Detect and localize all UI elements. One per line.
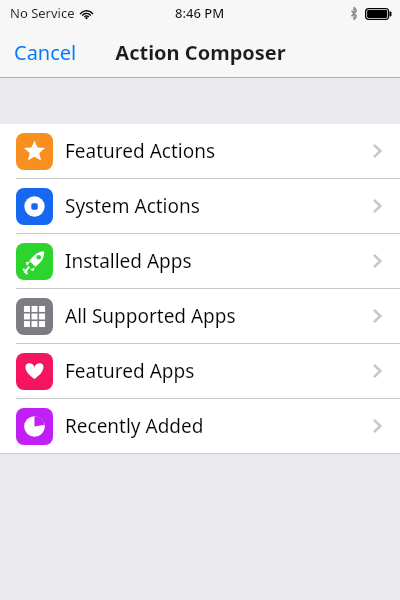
staticText: Installed Apps	[65, 248, 370, 274]
staticText: Featured Actions	[65, 138, 370, 164]
button[interactable]: System Actions	[0, 179, 400, 233]
staticText: 8:46 PM	[175, 4, 225, 22]
staticText: Featured Apps	[65, 358, 370, 384]
staticText: Action Composer	[115, 39, 286, 66]
staticText: Cancel	[14, 39, 77, 66]
staticText: Recently Added	[65, 413, 370, 439]
staticText: No Service	[10, 4, 75, 22]
button[interactable]: Recently Added	[0, 399, 400, 453]
staticText: All Supported Apps	[65, 303, 370, 329]
staticText: System Actions	[65, 193, 370, 219]
button[interactable]: Cancel	[0, 31, 91, 74]
button[interactable]: Featured Apps	[0, 344, 400, 398]
button[interactable]: Installed Apps	[0, 234, 400, 288]
button[interactable]: Featured Actions	[0, 124, 400, 178]
button[interactable]: All Supported Apps	[0, 289, 400, 343]
